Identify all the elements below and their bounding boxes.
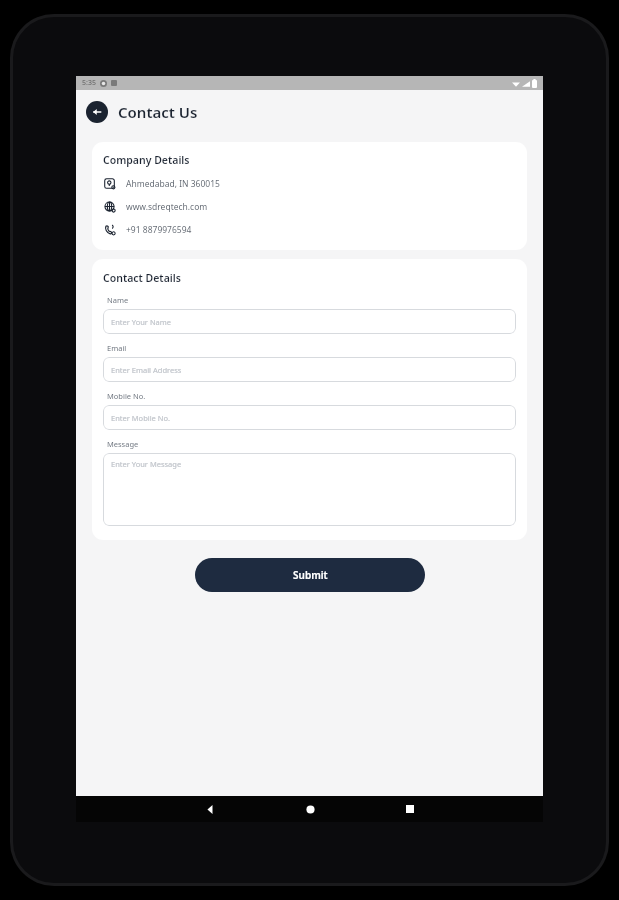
- button[interactable]: Recent apps: [360, 796, 460, 822]
- button[interactable]: Ahmedabad, IN 360015: [103, 177, 516, 190]
- staticText: Company Details: [103, 153, 190, 167]
- button[interactable]: Enter Mobile No.: [103, 405, 516, 430]
- staticText: Enter Mobile No.: [111, 413, 171, 423]
- button[interactable]: Back: [86, 101, 108, 123]
- staticText: Mobile No.: [107, 391, 146, 401]
- staticText: Message: [107, 439, 139, 449]
- button[interactable]: Submit: [195, 558, 425, 592]
- button[interactable]: Home: [260, 796, 360, 822]
- button[interactable]: +91 8879976594: [103, 223, 516, 236]
- button[interactable]: www.sdreqtech.com: [103, 200, 516, 213]
- staticText: +91 8879976594: [126, 224, 192, 236]
- staticText: Enter Your Name: [111, 317, 172, 327]
- staticText: Ahmedabad, IN 360015: [126, 178, 220, 190]
- button[interactable]: Enter Your Message: [103, 453, 516, 526]
- staticText: Enter Email Address: [111, 365, 182, 375]
- staticText: Enter Your Message: [111, 459, 182, 469]
- button[interactable]: Enter Your Name: [103, 309, 516, 334]
- staticText: Contact Details: [103, 271, 181, 285]
- staticText: Name: [107, 295, 129, 305]
- button[interactable]: Enter Email Address: [103, 357, 516, 382]
- staticText: Contact Us: [118, 102, 198, 122]
- staticText: www.sdreqtech.com: [126, 201, 208, 213]
- staticText: 5:35: [82, 78, 96, 88]
- staticText: Submit: [293, 568, 328, 582]
- button[interactable]: Back: [160, 796, 260, 822]
- staticText: Email: [107, 343, 127, 353]
